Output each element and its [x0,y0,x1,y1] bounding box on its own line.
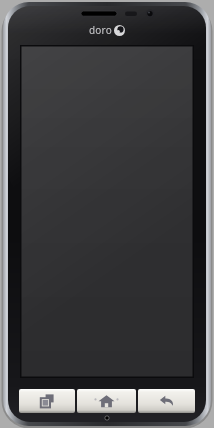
button[interactable]: Back [138,389,195,413]
button[interactable]: Recent apps [19,389,75,413]
button[interactable]: Home [77,389,136,413]
staticText: doro [89,23,112,37]
